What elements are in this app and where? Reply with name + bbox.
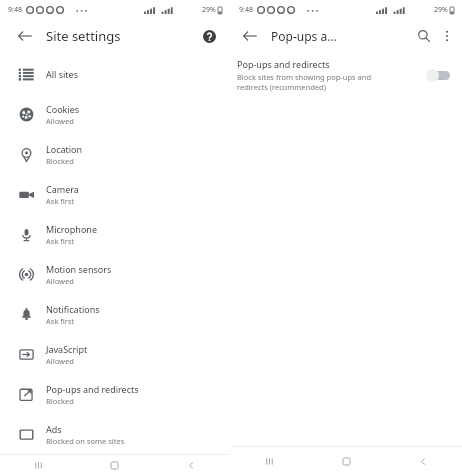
staticText: 29% <box>434 5 448 15</box>
staticText: JavaScript <box>46 343 88 355</box>
staticText: Blocked <box>46 156 74 166</box>
staticText: 29% <box>202 5 216 15</box>
staticText: Ads <box>46 423 62 435</box>
staticText: Ask first <box>46 316 75 326</box>
button[interactable]: Microphone <box>0 214 230 254</box>
staticText: Allowed <box>46 276 74 286</box>
button[interactable]: Search <box>414 26 434 46</box>
button[interactable]: Back <box>239 25 261 47</box>
staticText: Pop-ups and redirects <box>46 383 139 395</box>
staticText: Allowed <box>46 356 74 366</box>
button[interactable]: Pop-ups and redirects <box>231 52 462 100</box>
button[interactable]: All sites <box>0 54 230 94</box>
staticText: Motion sensors <box>46 263 112 275</box>
staticText: Ask first <box>46 196 75 206</box>
staticText: 9:48 <box>8 5 22 15</box>
staticText: 9:48 <box>239 5 253 15</box>
button[interactable]: More options <box>438 27 456 45</box>
button[interactable]: Location <box>0 134 230 174</box>
staticText: Cookies <box>46 103 80 115</box>
button[interactable]: Home <box>308 447 385 476</box>
button[interactable]: Back <box>14 25 36 47</box>
staticText: Notifications <box>46 303 100 315</box>
button[interactable]: JavaScript <box>0 334 230 374</box>
button[interactable]: Cookies <box>0 94 230 134</box>
button[interactable]: Back <box>385 447 462 476</box>
button[interactable]: Camera <box>0 174 230 214</box>
staticText: Blocked on some sites <box>46 436 125 446</box>
staticText: All sites <box>46 68 79 80</box>
staticText: Camera <box>46 183 79 195</box>
button[interactable]: Recents <box>231 447 308 476</box>
staticText: Ask first <box>46 236 75 246</box>
button[interactable]: Pop-ups and redirects <box>0 374 230 414</box>
staticText: Pop-ups and redirec... <box>271 28 342 44</box>
button[interactable]: Ads <box>0 414 230 454</box>
staticText: Site settings <box>46 27 121 45</box>
button[interactable]: Back <box>153 455 230 476</box>
staticText: Blocked <box>46 396 74 406</box>
button[interactable]: Notifications <box>0 294 230 334</box>
button[interactable]: Help <box>198 25 220 47</box>
button[interactable]: Recents <box>0 455 76 476</box>
staticText: Block sites from showing pop-ups and red… <box>237 72 372 92</box>
staticText: Allowed <box>46 116 74 126</box>
button[interactable]: Motion sensors <box>0 254 230 294</box>
staticText: Microphone <box>46 223 97 235</box>
staticText: Pop-ups and redirects <box>237 58 330 70</box>
button[interactable]: Home <box>76 455 153 476</box>
staticText: Location <box>46 143 83 155</box>
